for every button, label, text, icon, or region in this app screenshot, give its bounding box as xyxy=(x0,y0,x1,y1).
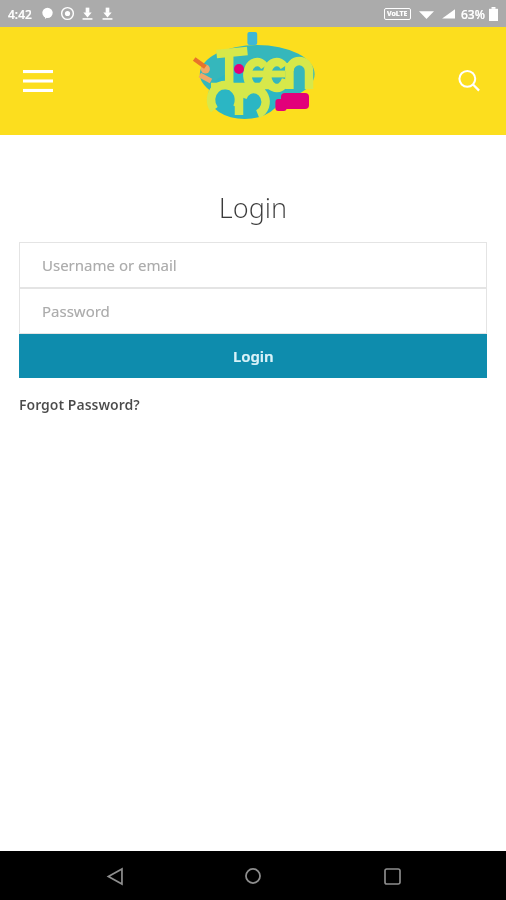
staticText: 4:42 xyxy=(8,6,32,22)
button[interactable]: Recents xyxy=(368,852,416,900)
button[interactable]: Forgot Password? xyxy=(19,393,140,416)
staticText: Forgot Password? xyxy=(19,395,140,414)
button[interactable]: Login xyxy=(19,334,487,378)
button[interactable]: Password xyxy=(19,288,487,334)
button[interactable]: Back xyxy=(91,852,139,900)
staticText: Password xyxy=(42,301,110,321)
staticText: VoLTE xyxy=(387,9,408,19)
staticText: Username or email xyxy=(42,255,177,275)
staticText: Login xyxy=(0,189,506,226)
button[interactable]: Username or email xyxy=(19,242,487,288)
staticText: Login xyxy=(233,346,274,366)
button[interactable]: Home xyxy=(229,852,277,900)
button[interactable]: Search xyxy=(446,58,492,104)
staticText: 63% xyxy=(461,6,485,22)
button[interactable]: Menu xyxy=(14,57,62,105)
